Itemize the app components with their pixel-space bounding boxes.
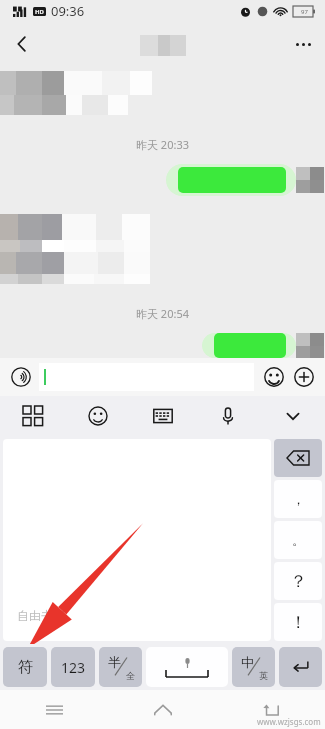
button[interactable]: Space — [146, 647, 228, 687]
staticText: 。 — [292, 532, 305, 548]
button[interactable]: 半 — [99, 647, 142, 687]
staticText: 符 — [18, 658, 33, 677]
button[interactable]: Backspace — [274, 439, 322, 477]
button[interactable]: Emoji keyboard — [65, 396, 130, 436]
button[interactable]: Recent apps — [0, 690, 109, 729]
button[interactable]: More functions — [290, 363, 318, 391]
staticText: ！ — [290, 612, 307, 633]
staticText: 中 — [241, 654, 254, 670]
button[interactable]: More options — [281, 22, 325, 66]
button[interactable] — [178, 167, 286, 193]
button[interactable]: Back — [0, 22, 44, 66]
button[interactable]: 符 — [3, 647, 47, 687]
staticText: ？ — [290, 571, 307, 592]
staticText: ， — [292, 491, 305, 507]
staticText: 昨天 20:33 — [136, 137, 189, 152]
staticText: 自由书写 — [17, 608, 65, 623]
button[interactable]: Emoji — [260, 363, 288, 391]
button[interactable]: Home — [109, 690, 217, 729]
staticText: 97 — [301, 8, 308, 16]
button[interactable]: 自由书写 — [3, 439, 271, 641]
button[interactable]: ？ — [274, 562, 322, 600]
button[interactable]: Voice — [195, 396, 260, 436]
staticText: 半 — [108, 654, 121, 670]
button[interactable]: Hide keyboard — [260, 396, 325, 436]
staticText: 123 — [61, 658, 86, 677]
staticText: 09:36 — [51, 2, 85, 20]
button[interactable]: ， — [274, 480, 322, 518]
button[interactable]: Back — [217, 690, 325, 729]
button[interactable]: Apps panel — [0, 396, 65, 436]
button[interactable] — [214, 333, 286, 358]
button[interactable]: Enter — [279, 647, 322, 687]
staticText: www.wzjsgs.com — [257, 716, 321, 727]
staticText: 全 — [126, 670, 135, 681]
staticText: 昨天 20:54 — [136, 306, 189, 321]
button[interactable]: 中 — [232, 647, 275, 687]
button[interactable]: Voice input — [7, 363, 35, 391]
button[interactable]: 。 — [274, 521, 322, 559]
staticText: 英 — [259, 670, 268, 681]
button[interactable]: Keyboard — [130, 396, 195, 436]
button[interactable]: 123 — [51, 647, 95, 687]
staticText: HD — [35, 8, 44, 16]
button[interactable]: ！ — [274, 603, 322, 641]
button[interactable] — [39, 363, 254, 391]
